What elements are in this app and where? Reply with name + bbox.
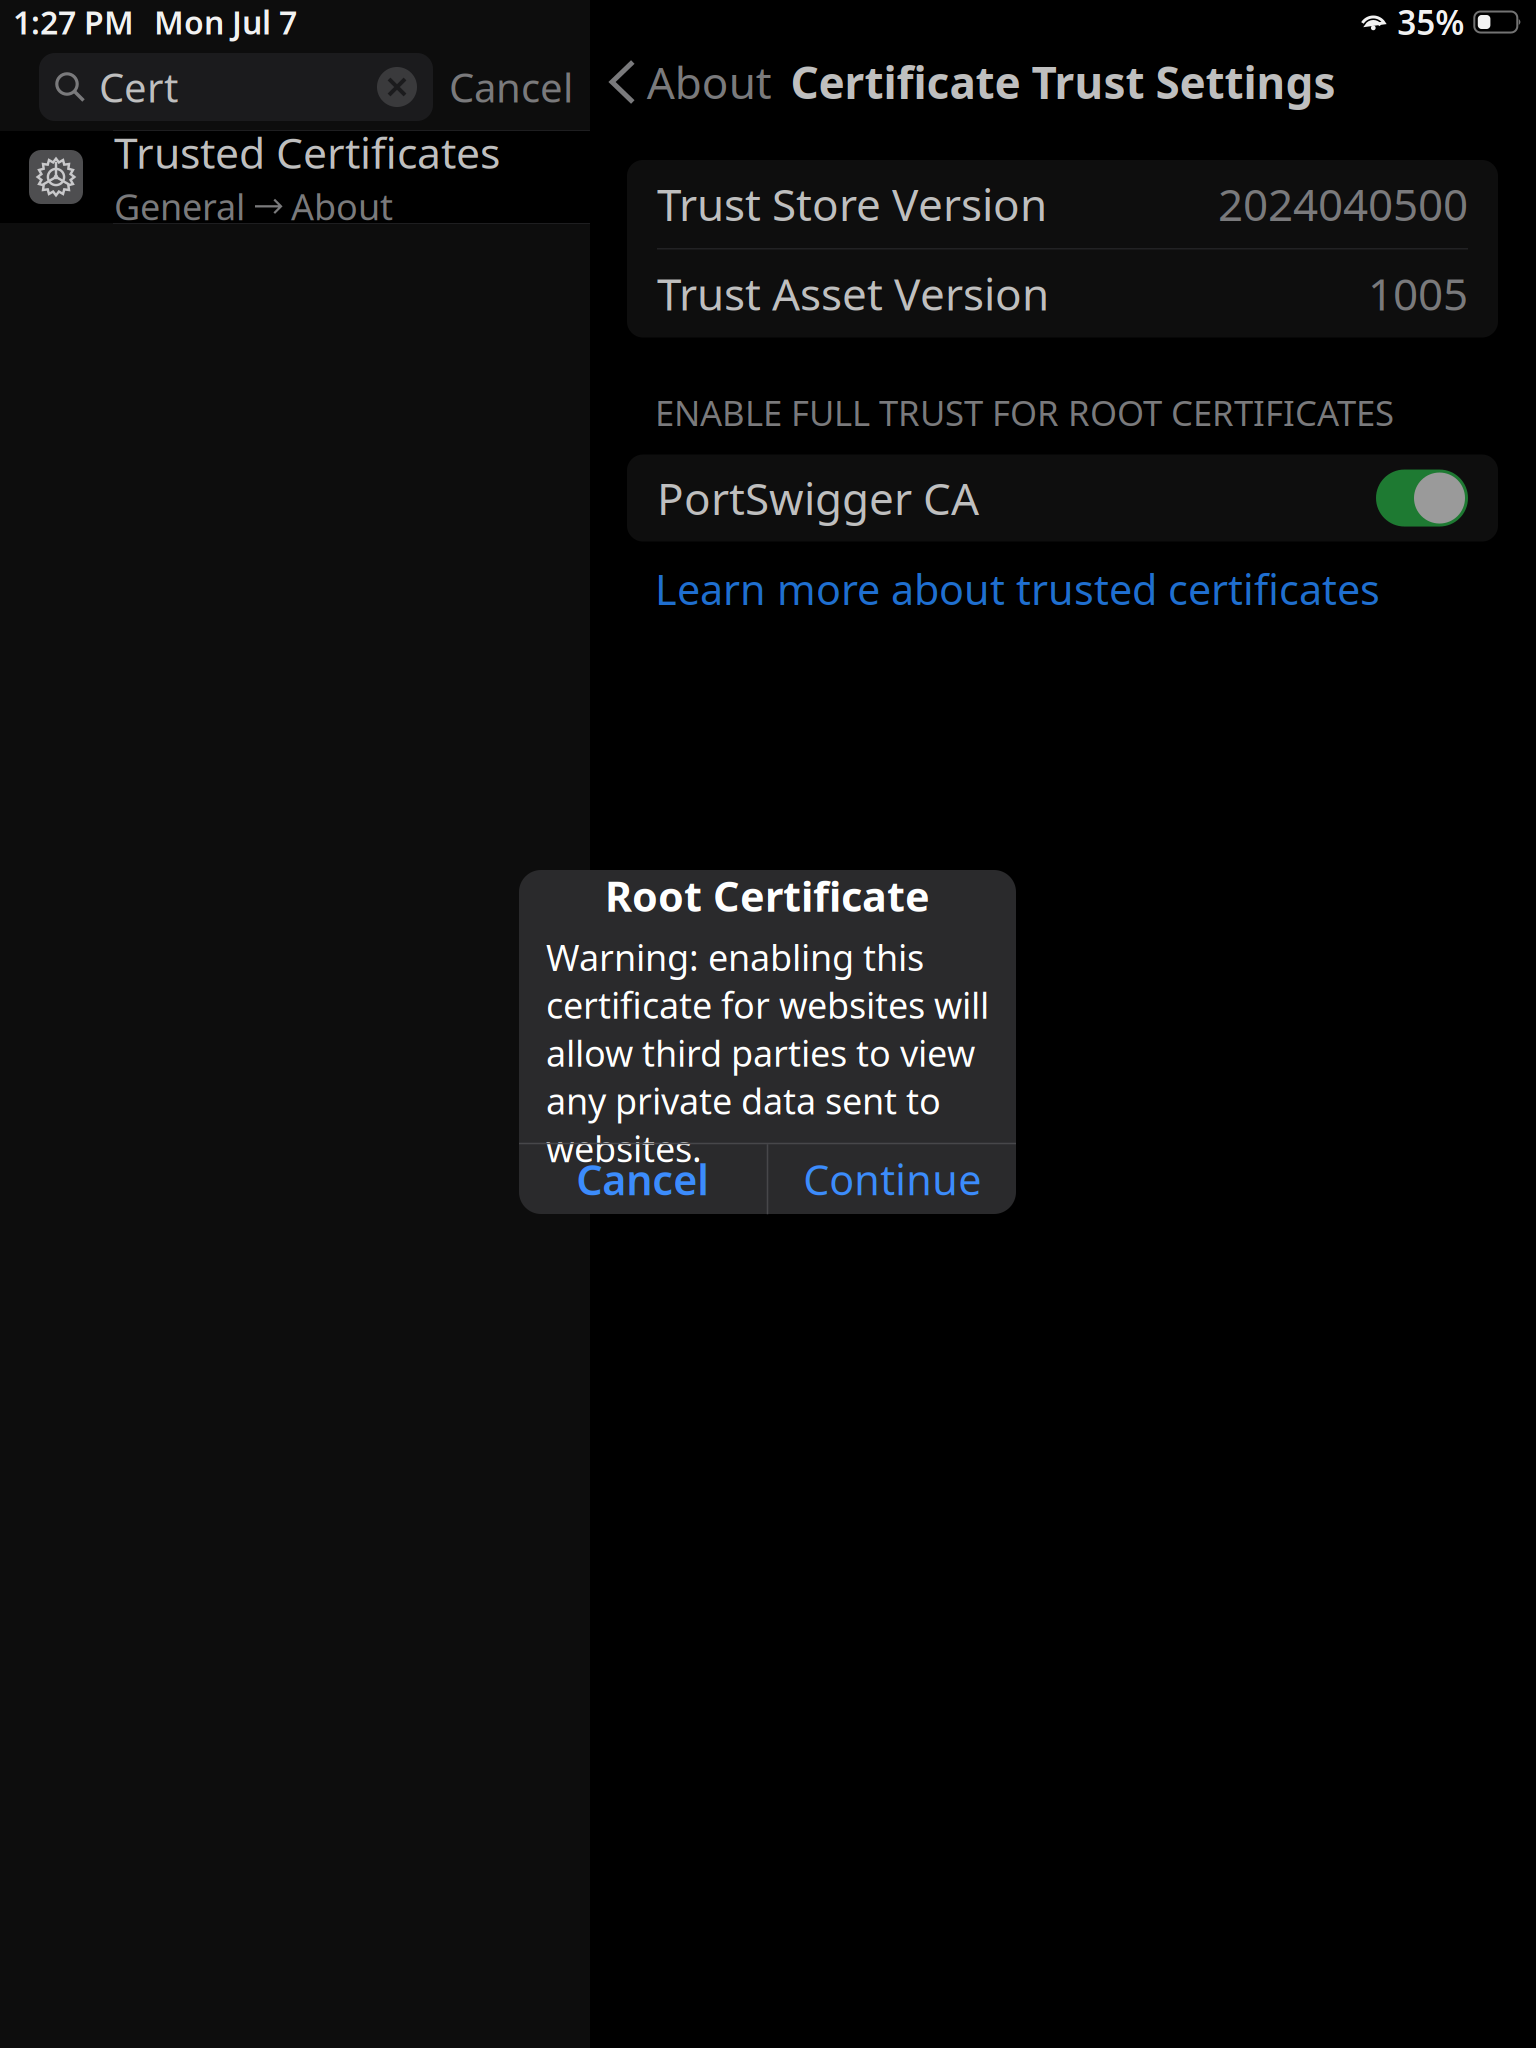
staticText: Trusted Certificates xyxy=(114,124,500,180)
staticText: About xyxy=(291,182,393,230)
staticText: Trust Store Version xyxy=(657,175,1047,233)
staticText: Continue xyxy=(803,1152,981,1207)
staticText: 35% xyxy=(1397,0,1464,44)
staticText: Cert xyxy=(99,60,178,113)
staticText: Mon Jul 7 xyxy=(154,1,297,43)
staticText: 2024040500 xyxy=(1218,175,1468,233)
staticText: Root Certificate xyxy=(605,868,930,923)
staticText: ENABLE FULL TRUST FOR ROOT CERTIFICATES xyxy=(655,389,1394,435)
staticText: Certificate Trust Settings xyxy=(790,53,1335,111)
button[interactable]: Trusted Certificates xyxy=(0,131,590,223)
button[interactable]: Cancel xyxy=(433,53,589,121)
staticText: Cancel xyxy=(576,1152,709,1207)
staticText: General xyxy=(114,182,245,230)
staticText: 1:27 PM xyxy=(13,1,134,43)
button[interactable]: Learn more about trusted certificates xyxy=(590,541,1380,616)
button[interactable]: Continue xyxy=(768,1144,1016,1214)
staticText: About xyxy=(647,53,772,111)
staticText: Warning: enabling this certificate for w… xyxy=(546,933,989,1172)
button[interactable]: PortSwigger CA trust toggle xyxy=(1376,469,1468,526)
staticText: PortSwigger CA xyxy=(657,469,979,527)
button[interactable]: Cancel xyxy=(519,1144,767,1214)
button[interactable]: About xyxy=(590,47,794,117)
staticText: Cancel xyxy=(449,60,573,113)
staticText: Learn more about trusted certificates xyxy=(655,561,1380,616)
staticText: Trust Asset Version xyxy=(657,264,1049,323)
staticText: 1005 xyxy=(1368,264,1468,323)
button[interactable]: Clear search xyxy=(377,67,417,107)
